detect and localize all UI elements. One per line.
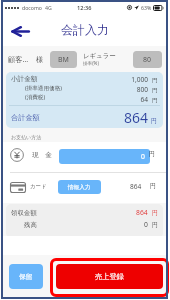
staticText: 63%: [141, 4, 152, 11]
staticText: 80: [143, 55, 152, 65]
staticText: 保留: [19, 272, 33, 281]
staticText: 0: [144, 220, 148, 229]
button[interactable]: 情報入力: [58, 180, 101, 194]
button[interactable]: Back: [7, 20, 34, 42]
staticText: 円: [152, 209, 158, 216]
staticText: 円: [152, 221, 158, 228]
button[interactable]: BM: [50, 51, 77, 68]
staticText: 現 金: [32, 150, 52, 159]
staticText: 残高: [24, 221, 37, 229]
staticText: 顧客…: [8, 54, 29, 64]
staticText: (掛率適用価格): [25, 84, 62, 92]
staticText: 円: [151, 117, 158, 125]
staticText: 800: [124, 85, 148, 94]
staticText: レギュラー: [83, 52, 116, 60]
staticText: 円: [149, 150, 156, 158]
staticText: 864: [130, 182, 142, 191]
staticText: 864: [124, 108, 149, 127]
staticText: 領収金額: [11, 209, 37, 217]
staticText: お支払い方法: [11, 134, 42, 140]
staticText: 様: [36, 55, 44, 64]
staticText: 円: [150, 182, 157, 190]
staticText: (消費税): [25, 93, 46, 101]
button[interactable]: 現 金: [3, 142, 166, 172]
button[interactable]: 売上登録: [56, 264, 163, 289]
button[interactable]: 保留: [9, 264, 43, 289]
staticText: 64: [124, 95, 148, 104]
staticText: 円: [152, 77, 158, 84]
staticText: 合計金額: [11, 113, 40, 122]
button[interactable]: 80: [133, 51, 162, 68]
staticText: 会計入力: [61, 22, 109, 37]
staticText: BM: [58, 55, 69, 65]
staticText: 864: [136, 208, 148, 217]
staticText: 1,000: [124, 75, 148, 84]
staticText: 掛率(%): [83, 60, 99, 66]
staticText: 4G: [45, 4, 52, 11]
staticText: 情報入力: [68, 184, 91, 191]
staticText: 円: [152, 87, 158, 94]
staticText: 円: [152, 97, 158, 104]
staticText: 小計金額: [11, 75, 38, 83]
staticText: 0: [141, 152, 145, 161]
button[interactable]: カード: [3, 173, 166, 203]
staticText: docomo: [22, 4, 42, 11]
staticText: 売上登録: [95, 272, 124, 281]
staticText: カード: [30, 183, 47, 190]
staticText: 12:36: [77, 4, 92, 12]
